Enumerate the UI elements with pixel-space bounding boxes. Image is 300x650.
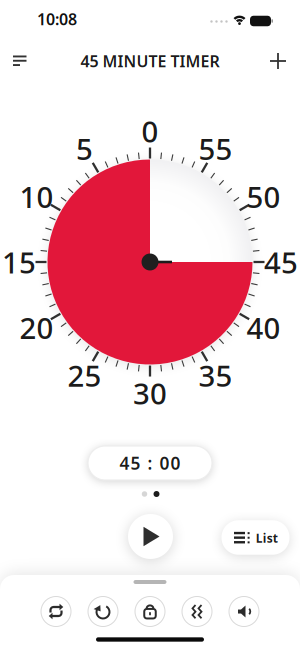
staticText: 20 [20, 308, 54, 347]
staticText: 40 [246, 308, 280, 347]
staticText: 10:08 [37, 8, 77, 30]
button[interactable]: Timer list [221, 520, 289, 555]
button[interactable]: Start timer [128, 514, 173, 559]
button[interactable]: Vibrate [182, 596, 212, 626]
button[interactable]: Menu [5, 45, 35, 75]
staticText: 30 [133, 373, 167, 412]
staticText: 25 [67, 356, 101, 395]
button[interactable]: Reset [88, 596, 118, 626]
staticText: 45 MINUTE TIMER [80, 50, 219, 72]
button[interactable]: Repeat [41, 596, 71, 626]
staticText: 35 [198, 356, 232, 395]
staticText: 45 [264, 242, 298, 281]
button[interactable]: Lock [135, 596, 165, 626]
staticText: List [256, 530, 278, 546]
staticText: 15 [2, 242, 36, 281]
button[interactable]: Timer duration 45:00 [88, 446, 212, 480]
button[interactable]: Sound [229, 596, 259, 626]
staticText: 0 [141, 111, 158, 150]
staticText: 5 [76, 129, 93, 168]
staticText: 50 [246, 177, 280, 216]
staticText: 10 [20, 177, 54, 216]
button[interactable]: Add timer [263, 46, 293, 76]
staticText: 55 [198, 129, 232, 168]
staticText: 45 : 00 [119, 451, 180, 474]
